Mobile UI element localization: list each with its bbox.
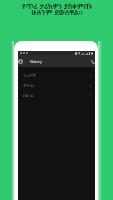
- button[interactable]: Open navigation drawer: [18, 59, 23, 64]
- staticText: ጥሪዎች: [23, 73, 36, 78]
- button[interactable]: ጥሪዎች: [18, 70, 95, 80]
- staticText: History: [30, 59, 42, 64]
- button[interactable]: ስለ እኔ: [18, 90, 95, 100]
- staticText: ቅንብር: [23, 83, 35, 88]
- button[interactable]: Dial: [90, 59, 95, 64]
- staticText: የጥሪ ታሪክዎን ያስቀምጡ: [22, 2, 92, 12]
- staticText: ስለ እኔ: [23, 92, 35, 98]
- button[interactable]: ቅንብር: [18, 80, 95, 90]
- staticText: ሁሉንም ደውለዋል።: [31, 8, 83, 18]
